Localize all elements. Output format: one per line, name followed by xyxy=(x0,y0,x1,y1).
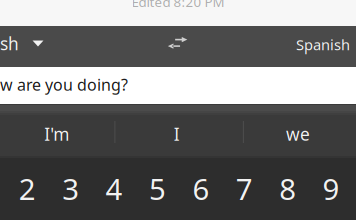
button[interactable]: we xyxy=(244,113,356,155)
staticText: 3 xyxy=(62,169,79,208)
button[interactable]: 4 xyxy=(92,156,136,220)
button[interactable]: I'm xyxy=(0,113,114,155)
staticText: sh xyxy=(0,32,19,55)
staticText: 9 xyxy=(323,169,340,208)
button[interactable]: Source language, English xyxy=(0,26,60,67)
button[interactable]: Swap languages xyxy=(159,28,197,58)
button[interactable]: 5 xyxy=(136,156,179,220)
button[interactable]: Spanish xyxy=(294,26,350,67)
button[interactable]: 3 xyxy=(49,156,92,220)
staticText: Edited 8:20 PM xyxy=(131,0,224,11)
staticText: Spanish xyxy=(296,35,350,54)
staticText: we xyxy=(286,122,310,145)
button[interactable]: 2 xyxy=(6,156,49,220)
button[interactable]: 6 xyxy=(179,156,223,220)
staticText: 6 xyxy=(192,169,209,208)
staticText: 8 xyxy=(279,169,296,208)
staticText: w are you doing? xyxy=(0,74,128,95)
staticText: I'm xyxy=(44,122,69,145)
button[interactable]: 8 xyxy=(266,156,309,220)
staticText: 5 xyxy=(149,169,166,208)
staticText: 4 xyxy=(106,169,123,208)
button[interactable]: 9 xyxy=(309,156,353,220)
staticText: 2 xyxy=(19,169,36,208)
staticText: I xyxy=(174,122,180,145)
button[interactable]: I xyxy=(115,113,243,155)
staticText: 7 xyxy=(236,169,253,208)
button[interactable]: 7 xyxy=(223,156,266,220)
